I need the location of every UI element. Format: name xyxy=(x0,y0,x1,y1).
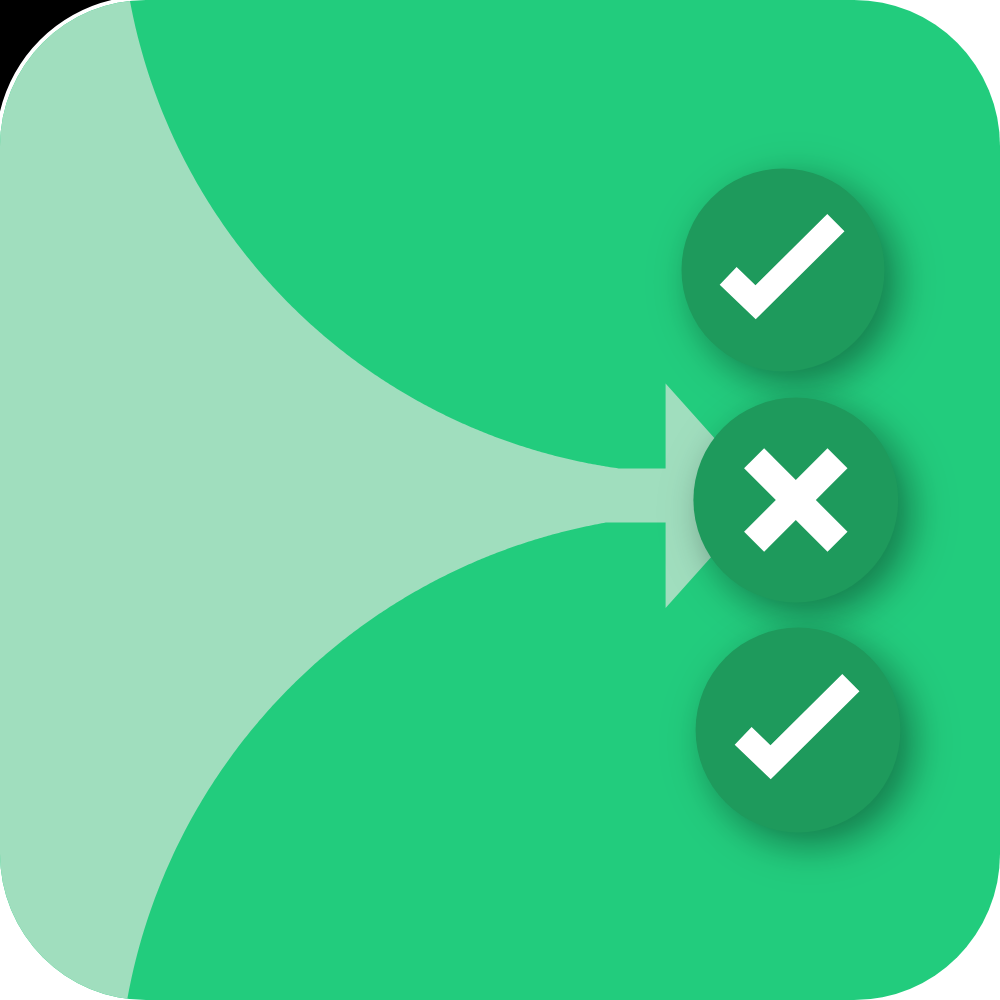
button[interactable]: Passed xyxy=(682,169,885,372)
button[interactable]: Passed xyxy=(696,628,901,833)
button[interactable]: Failed xyxy=(693,398,898,603)
